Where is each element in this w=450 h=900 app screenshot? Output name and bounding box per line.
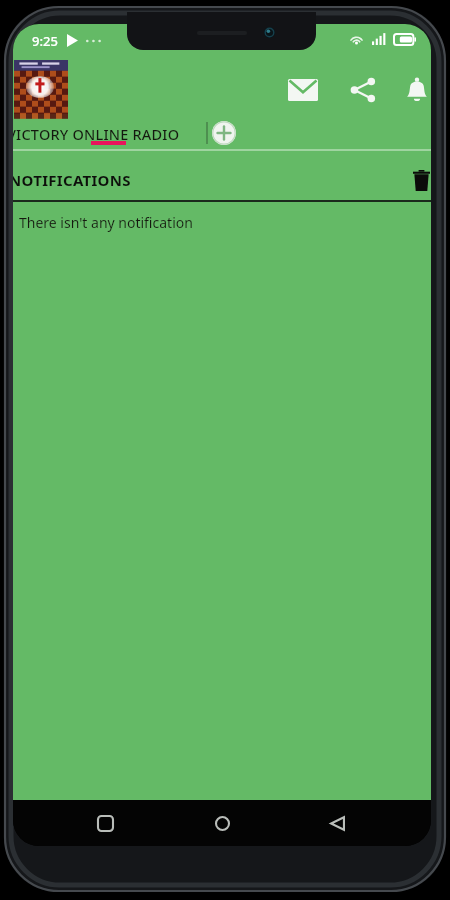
button[interactable]: Share [335,68,391,112]
button[interactable]: Add station [212,121,236,145]
button[interactable]: Clear notifications [403,162,431,198]
staticText: VICTORY ONLINE RADIO [13,124,180,144]
button[interactable]: Recents [89,807,121,839]
staticText: There isn't any notification [19,213,193,232]
button[interactable]: Messages [275,68,331,112]
button[interactable]: VICTORY ONLINE RADIO [13,118,207,150]
button[interactable]: Notifications [391,68,431,112]
staticText: NOTIFICATIONS [13,170,131,190]
button[interactable]: NOTIFICATIONS [13,164,249,196]
staticText: 9:25 [32,32,58,50]
button[interactable]: Station logo [14,60,68,114]
button[interactable]: Home [206,807,238,839]
button[interactable] [13,24,431,800]
button[interactable]: Back [321,807,353,839]
